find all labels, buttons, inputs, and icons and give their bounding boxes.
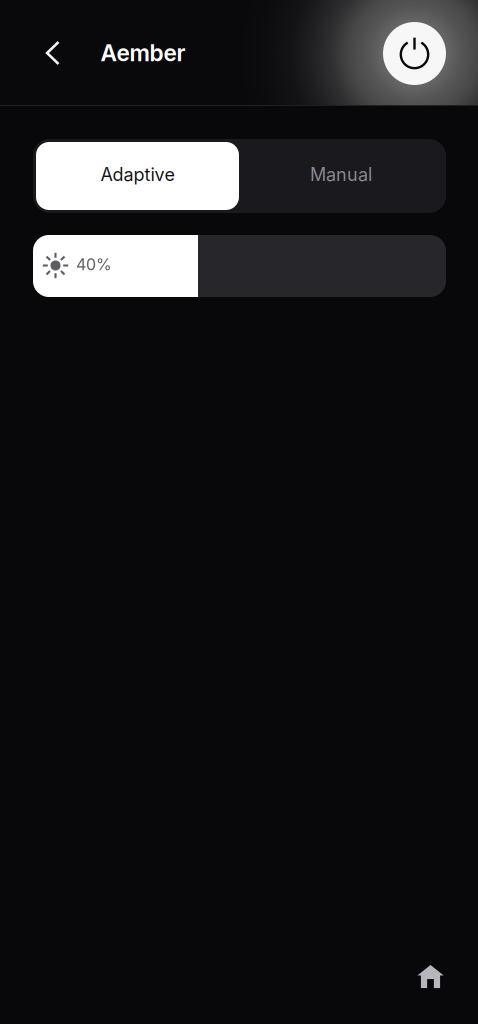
staticText: Aember xyxy=(100,39,185,67)
button[interactable]: Home xyxy=(404,950,456,1002)
button[interactable]: Back xyxy=(30,24,76,82)
button[interactable]: Adaptive xyxy=(36,142,239,210)
staticText: Manual xyxy=(310,164,372,185)
staticText: 40% xyxy=(76,255,112,274)
button[interactable]: Power xyxy=(383,22,446,85)
button[interactable]: Brightness 40 percent xyxy=(33,235,446,297)
button[interactable]: Manual xyxy=(239,142,443,210)
staticText: Adaptive xyxy=(100,164,174,185)
